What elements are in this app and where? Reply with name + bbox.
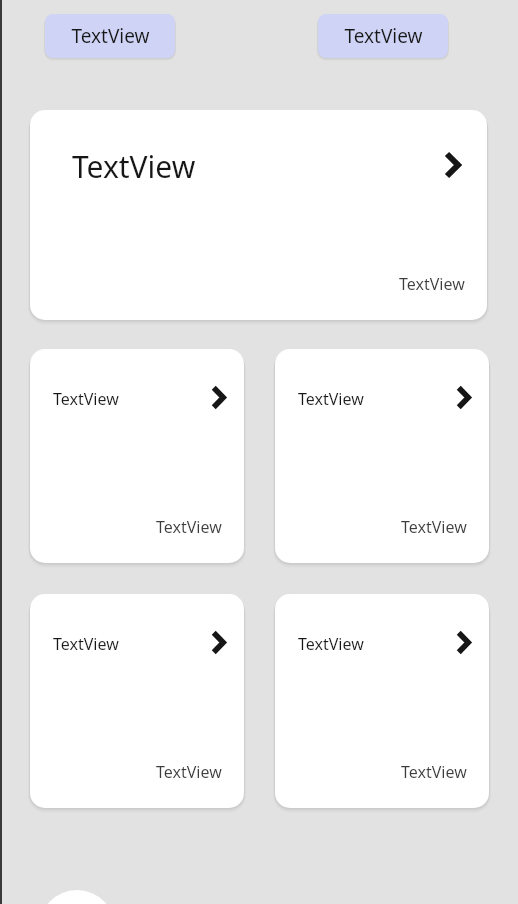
button[interactable]: Open (456, 630, 471, 655)
button[interactable]: TextView (30, 349, 244, 563)
staticText: TextView (298, 388, 364, 410)
button[interactable]: TextView (30, 594, 244, 808)
button[interactable]: Open (444, 151, 461, 179)
button[interactable]: TextView (275, 594, 489, 808)
staticText: TextView (401, 761, 467, 783)
staticText: TextView (399, 273, 465, 295)
staticText: TextView (72, 146, 196, 187)
button[interactable]: TextView (318, 14, 448, 58)
button[interactable]: Open (211, 385, 226, 410)
staticText: TextView (156, 761, 222, 783)
staticText: TextView (71, 23, 150, 49)
staticText: TextView (53, 633, 119, 655)
button[interactable]: Open (211, 630, 226, 655)
button[interactable]: Open (456, 385, 471, 410)
button[interactable]: Add (39, 890, 115, 904)
staticText: TextView (344, 23, 423, 49)
staticText: TextView (156, 516, 222, 538)
staticText: TextView (298, 633, 364, 655)
button[interactable]: TextView (275, 349, 489, 563)
button[interactable]: TextView (45, 14, 175, 58)
staticText: TextView (53, 388, 119, 410)
button[interactable]: TextView (30, 110, 487, 320)
staticText: TextView (401, 516, 467, 538)
